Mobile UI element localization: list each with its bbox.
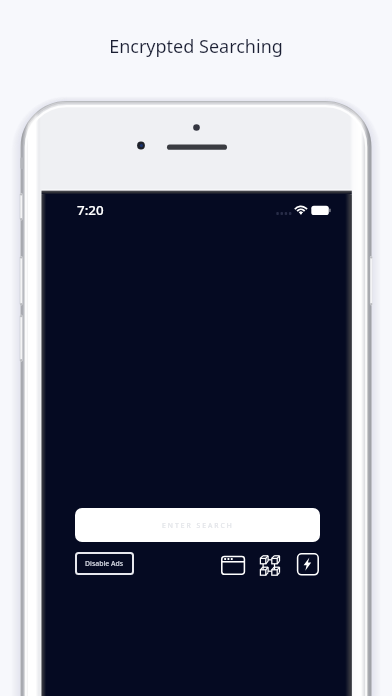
button[interactable]: Disable Ads <box>75 552 134 575</box>
staticText: ENTER SEARCH <box>162 521 234 530</box>
button[interactable]: Browser window <box>220 554 246 576</box>
staticText: Disable Ads <box>85 559 124 568</box>
button[interactable]: Fast mode <box>295 551 319 575</box>
button[interactable]: Network nodes <box>259 553 283 577</box>
button[interactable]: ENTER SEARCH <box>75 508 320 542</box>
staticText: Encrypted Searching <box>0 34 392 59</box>
staticText: 7:20 <box>77 201 104 219</box>
